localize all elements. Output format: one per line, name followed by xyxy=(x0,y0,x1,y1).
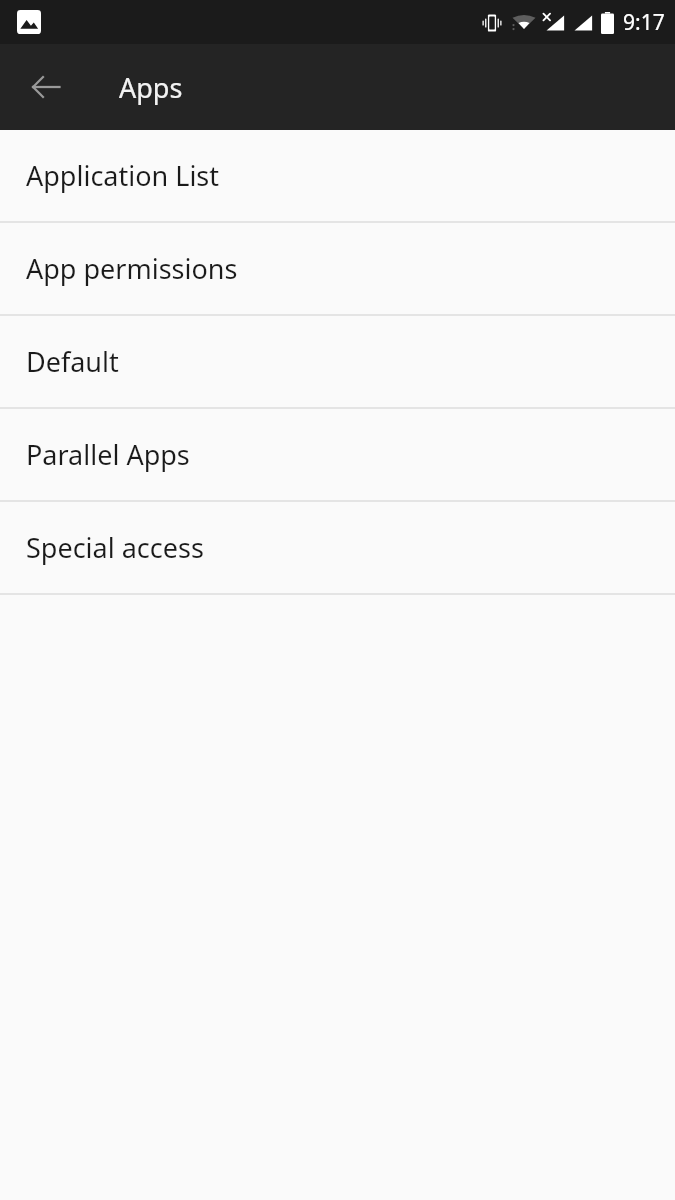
button[interactable]: Default xyxy=(0,316,675,409)
staticText: Default xyxy=(26,343,119,380)
button[interactable]: App permissions xyxy=(0,223,675,316)
staticText: Application List xyxy=(26,157,220,194)
staticText: Parallel Apps xyxy=(26,436,190,473)
button[interactable]: Application List xyxy=(0,130,675,223)
button[interactable]: Back xyxy=(14,55,78,119)
staticText: App permissions xyxy=(26,250,238,287)
button[interactable]: Parallel Apps xyxy=(0,409,675,502)
staticText: Apps xyxy=(119,69,183,106)
staticText: Special access xyxy=(26,529,204,566)
button[interactable]: Special access xyxy=(0,502,675,595)
staticText: 9:17 xyxy=(623,8,665,37)
